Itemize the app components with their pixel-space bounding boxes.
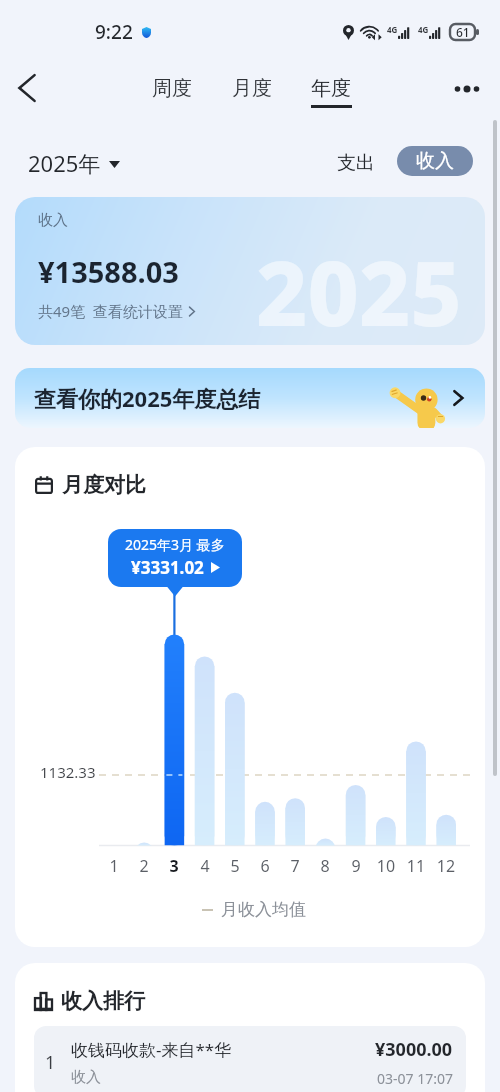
staticText: 10 — [371, 855, 401, 877]
staticText: ¥13588.03 — [38, 252, 179, 291]
staticText: 11 — [401, 855, 431, 877]
staticText: 9 — [341, 855, 371, 877]
button[interactable]: 2025年 — [24, 144, 124, 182]
staticText: 收入排行 — [61, 988, 145, 1014]
staticText: ¥3000.00 — [375, 1037, 453, 1062]
staticText: 1 — [99, 855, 129, 877]
staticText: 年度 — [311, 76, 351, 101]
staticText: 4G — [387, 24, 398, 35]
staticText: 9:22 — [95, 19, 133, 45]
button[interactable]: 周度 — [145, 74, 199, 110]
staticText: 3 — [159, 855, 189, 877]
staticText: 2 — [129, 855, 159, 877]
staticText: 4 — [190, 855, 220, 877]
staticText: 2025年3月 最多 — [125, 535, 225, 554]
staticText: 12 — [431, 855, 461, 877]
staticText: 61 — [456, 24, 470, 40]
button[interactable]: 查看你的2025年度总结 — [15, 368, 485, 428]
staticText: 周度 — [152, 76, 192, 101]
staticText: 2025年 — [28, 148, 101, 178]
staticText: 查看你的2025年度总结 — [34, 383, 261, 413]
staticText: 支出 — [337, 151, 375, 175]
staticText: 8 — [310, 855, 340, 877]
button[interactable]: 年度 — [304, 74, 358, 110]
button[interactable]: 月度 — [225, 74, 279, 110]
staticText: 03-07 17:07 — [377, 1069, 453, 1088]
staticText: 月度 — [232, 76, 272, 101]
staticText: 收入 — [38, 211, 68, 230]
button[interactable]: 支出 — [331, 147, 381, 179]
staticText: 收入 — [71, 1068, 101, 1087]
staticText: 月收入均值 — [221, 899, 306, 920]
staticText: 6 — [250, 855, 280, 877]
staticText: 共49笔 查看统计设置 — [38, 301, 183, 321]
staticText: 收入 — [416, 149, 454, 173]
button[interactable]: 2025 — [15, 197, 485, 345]
button[interactable]: 收入 — [397, 146, 473, 176]
staticText: 1 — [45, 1050, 56, 1075]
button[interactable]: Back — [6, 67, 48, 109]
button[interactable]: 1 — [34, 1026, 466, 1092]
staticText: ¥3331.02 — [131, 556, 204, 579]
staticText: 月度对比 — [62, 472, 146, 498]
staticText: 4G — [418, 24, 429, 35]
staticText: 2025 — [256, 231, 462, 345]
other: Open summary — [448, 388, 468, 408]
staticText: 5 — [220, 855, 250, 877]
staticText: 7 — [280, 855, 310, 877]
button[interactable]: More options — [446, 68, 488, 110]
staticText: 收钱码收款-来自**华 — [71, 1038, 232, 1061]
button[interactable]: 2025年3月 最多 — [108, 529, 242, 597]
staticText: 1132.33 — [40, 762, 96, 782]
